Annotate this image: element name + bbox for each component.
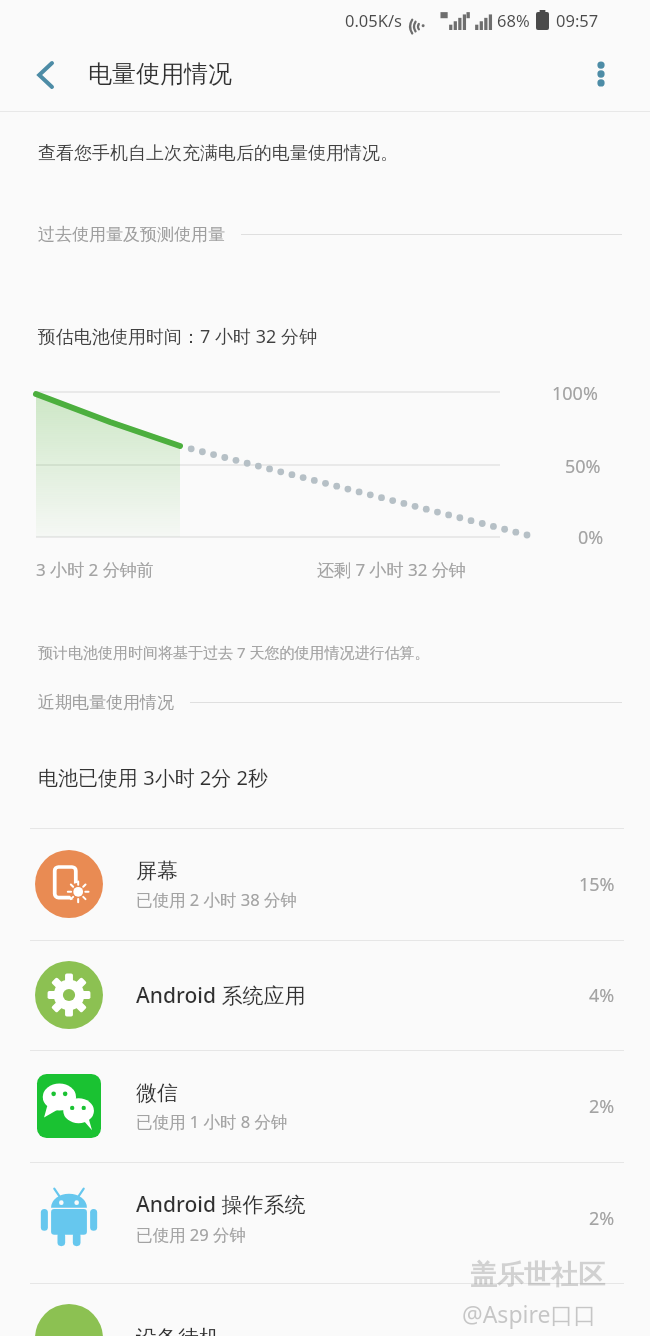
staticText: 2%: [589, 1206, 615, 1231]
staticText: 68%: [497, 9, 530, 31]
staticText: 设备待机: [136, 1325, 220, 1336]
staticText: 查看您手机自上次充满电后的电量使用情况。: [38, 142, 398, 165]
staticText: 盖乐世社区: [470, 1258, 605, 1292]
staticText: 还剩 7 小时 32 分钟: [317, 558, 466, 581]
staticText: @Aspire口口: [462, 1298, 597, 1329]
staticText: 已使用 29 分钟: [136, 1223, 246, 1246]
button[interactable]: Android 操作系统: [0, 1162, 650, 1274]
button[interactable]: 设备待机: [0, 1283, 650, 1336]
staticText: 0.05K/s: [345, 9, 402, 31]
staticText: 近期电量使用情况: [38, 692, 174, 713]
staticText: 预估电池使用时间：7 小时 32 分钟: [38, 324, 317, 349]
button[interactable]: More options: [574, 47, 628, 101]
button[interactable]: 微信: [0, 1050, 650, 1162]
staticText: 已使用 1 小时 8 分钟: [136, 1110, 288, 1133]
staticText: 09:57: [556, 9, 599, 31]
staticText: 2%: [589, 1094, 615, 1119]
staticText: 0%: [578, 525, 604, 550]
staticText: 100%: [552, 381, 598, 406]
staticText: 15%: [579, 872, 615, 897]
staticText: 3 小时 2 分钟前: [36, 558, 154, 581]
staticText: 电量使用情况: [88, 59, 232, 89]
staticText: Android 系统应用: [136, 981, 306, 1010]
staticText: 屏幕: [136, 858, 178, 884]
button[interactable]: Android 系统应用: [0, 940, 650, 1050]
button[interactable]: 屏幕: [0, 828, 650, 940]
staticText: 已使用 2 小时 38 分钟: [136, 888, 297, 911]
staticText: 50%: [565, 454, 601, 479]
staticText: 预计电池使用时间将基于过去 7 天您的使用情况进行估算。: [38, 642, 430, 662]
staticText: 4%: [589, 983, 615, 1008]
button[interactable]: Back: [18, 47, 74, 103]
staticText: Android 操作系统: [136, 1190, 306, 1219]
staticText: 过去使用量及预测使用量: [38, 224, 225, 245]
staticText: 电池已使用 3小时 2分 2秒: [38, 764, 268, 791]
staticText: 微信: [136, 1080, 178, 1106]
